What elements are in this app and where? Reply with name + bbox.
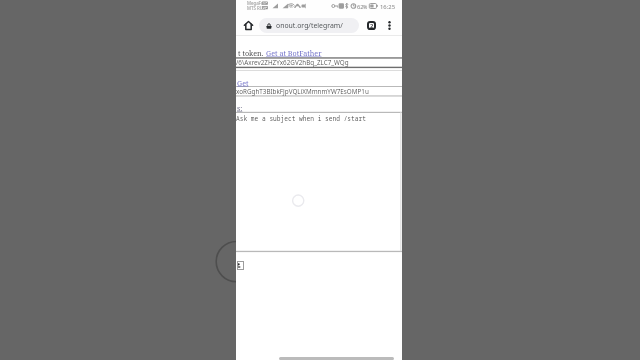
staticText: xoRGghT3BIbkFJpVQLiXMmnmYW7EsOMP1u — [236, 87, 369, 96]
staticText: t token. — [238, 48, 266, 58]
staticText: 62 — [357, 3, 364, 11]
staticText: MTS RUS — [247, 5, 266, 11]
staticText: s: — [237, 103, 243, 113]
button[interactable]: Get — [237, 78, 249, 88]
staticText: onout.org/telegram/ — [276, 21, 343, 30]
button[interactable]: xoRGghT3BIbkFJpVQLiXMmnmYW7EsOMP1u — [235, 86, 401, 96]
button[interactable]: Get at BotFather — [266, 48, 322, 58]
staticText: Ask me a subject when i send /start — [236, 114, 366, 122]
button[interactable]: Insert image — [237, 261, 244, 270]
staticText: % — [363, 3, 368, 10]
button[interactable]: More options — [382, 18, 397, 33]
staticText: MegaFon — [247, 0, 267, 6]
button[interactable]: /6\Axrev2ZHZYx62GV2hBq_ZLC7_WQg — [235, 57, 401, 67]
staticText: /6\Axrev2ZHZYx62GV2hBq_ZLC7_WQg — [236, 58, 349, 67]
button[interactable]: Tabs — [364, 18, 379, 33]
button[interactable]: Home — [240, 17, 257, 34]
button[interactable]: onout.org/telegram/ — [259, 18, 359, 33]
staticText: 2 — [370, 22, 374, 30]
button[interactable]: Ask me a subject when i send /start — [235, 112, 401, 251]
staticText: 16:25 — [380, 3, 396, 11]
staticText: Get — [237, 78, 249, 88]
